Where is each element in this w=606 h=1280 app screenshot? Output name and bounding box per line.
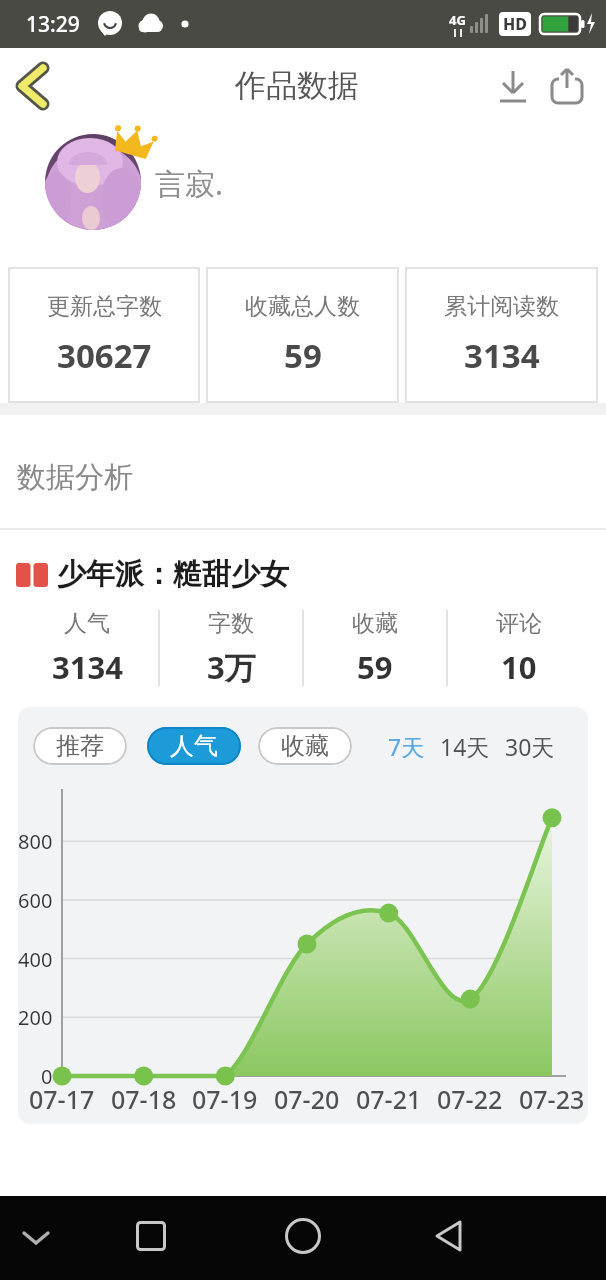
button[interactable]	[8, 62, 56, 110]
button[interactable]	[417, 1204, 481, 1268]
button[interactable]: 人气	[147, 727, 241, 765]
staticText: 59	[357, 646, 393, 688]
staticText: 30627	[57, 333, 152, 378]
button[interactable]: 收藏	[258, 727, 352, 765]
staticText: 07-20	[274, 1082, 340, 1112]
staticText: 推荐	[56, 731, 104, 761]
staticText: 600	[18, 887, 53, 914]
staticText: 07-17	[29, 1082, 95, 1112]
button[interactable]: 14天	[440, 731, 490, 762]
staticText: 59	[284, 333, 322, 378]
staticText: 400	[18, 946, 53, 973]
button[interactable]	[491, 64, 535, 108]
staticText: 人气	[170, 731, 218, 761]
staticText: 07-19	[192, 1082, 258, 1112]
staticText: 13:29	[26, 10, 80, 39]
staticText: 3万	[207, 646, 256, 688]
staticText: 0	[41, 1063, 53, 1090]
staticText: 800	[18, 828, 53, 855]
button[interactable]: 更新总字数	[8, 267, 200, 403]
staticText: 言寂.	[155, 163, 224, 204]
staticText: 200	[18, 1004, 53, 1031]
button[interactable]: 推荐	[33, 727, 127, 765]
staticText: HD	[503, 13, 527, 35]
button[interactable]	[119, 1204, 183, 1268]
staticText: 4G	[449, 11, 466, 29]
staticText: 07-21	[356, 1082, 422, 1112]
staticText: 字数	[208, 609, 254, 638]
button[interactable]	[10, 1212, 62, 1264]
staticText: 收藏	[352, 609, 398, 638]
staticText: 少年派：糙甜少女	[57, 556, 289, 593]
button[interactable]	[271, 1204, 335, 1268]
staticText: 收藏	[281, 731, 329, 761]
staticText: 人气	[64, 609, 110, 638]
button[interactable]: 收藏总人数	[206, 267, 399, 403]
staticText: 累计阅读数	[444, 292, 559, 321]
staticText: 更新总字数	[47, 292, 162, 321]
button[interactable]: 累计阅读数	[405, 267, 598, 403]
staticText: 07-18	[111, 1082, 177, 1112]
staticText: 10	[501, 646, 537, 688]
staticText: 数据分析	[17, 459, 133, 496]
staticText: 作品数据	[235, 66, 359, 105]
button[interactable]: 7天	[388, 731, 425, 762]
staticText: 3134	[52, 646, 123, 688]
staticText: 3134	[464, 333, 540, 378]
staticText: 07-23	[519, 1082, 585, 1112]
staticText: 评论	[496, 609, 542, 638]
staticText: 收藏总人数	[245, 292, 360, 321]
button[interactable]	[544, 63, 590, 109]
button[interactable]: 30天	[505, 731, 555, 762]
staticText: 07-22	[437, 1082, 503, 1112]
